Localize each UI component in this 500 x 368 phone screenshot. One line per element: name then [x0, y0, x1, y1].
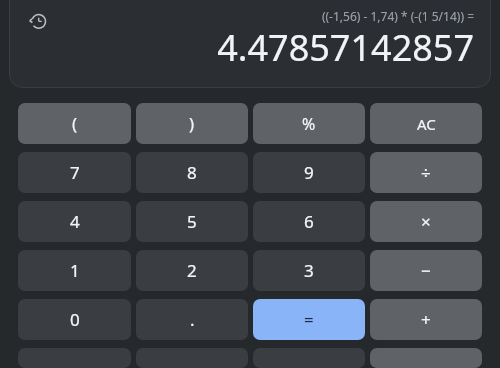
staticText: 0: [70, 308, 80, 331]
button[interactable]: %: [253, 103, 365, 144]
button[interactable]: 9: [253, 152, 365, 193]
staticText: 9: [304, 161, 314, 184]
staticText: 6: [304, 210, 314, 233]
button[interactable]: +: [370, 299, 482, 340]
button[interactable]: History: [23, 6, 53, 36]
button[interactable]: 1: [18, 250, 131, 291]
button[interactable]: ÷: [370, 152, 482, 193]
button[interactable]: AC: [370, 103, 482, 144]
button[interactable]: 3: [253, 250, 365, 291]
staticText: 8: [187, 161, 197, 184]
button[interactable]: 5: [136, 201, 248, 242]
staticText: ((-1,56) - 1,74) * (-(1 5/14)) =: [321, 8, 474, 24]
staticText: +: [421, 308, 431, 331]
button[interactable]: =: [253, 299, 365, 340]
button[interactable]: 8: [136, 152, 248, 193]
staticText: 4: [70, 210, 80, 233]
staticText: 3: [304, 259, 314, 282]
staticText: ÷: [421, 161, 431, 184]
button[interactable]: 2: [136, 250, 248, 291]
staticText: 2: [187, 259, 197, 282]
staticText: 5: [187, 210, 197, 233]
button[interactable]: ): [136, 103, 248, 144]
button[interactable]: [370, 348, 482, 368]
button[interactable]: .: [136, 299, 248, 340]
button[interactable]: 7: [18, 152, 131, 193]
staticText: 4.47857142857: [217, 23, 474, 72]
staticText: −: [421, 259, 431, 282]
staticText: AC: [417, 114, 436, 134]
button[interactable]: 6: [253, 201, 365, 242]
staticText: 7: [70, 161, 80, 184]
staticText: ): [189, 112, 195, 135]
button[interactable]: −: [370, 250, 482, 291]
staticText: (: [72, 112, 78, 135]
button[interactable]: ×: [370, 201, 482, 242]
button[interactable]: (: [18, 103, 131, 144]
staticText: 1: [70, 259, 80, 282]
staticText: %: [302, 113, 316, 135]
staticText: =: [304, 308, 314, 331]
staticText: ×: [421, 210, 431, 233]
button[interactable]: 0: [18, 299, 131, 340]
button[interactable]: 4: [18, 201, 131, 242]
staticText: .: [190, 308, 195, 331]
